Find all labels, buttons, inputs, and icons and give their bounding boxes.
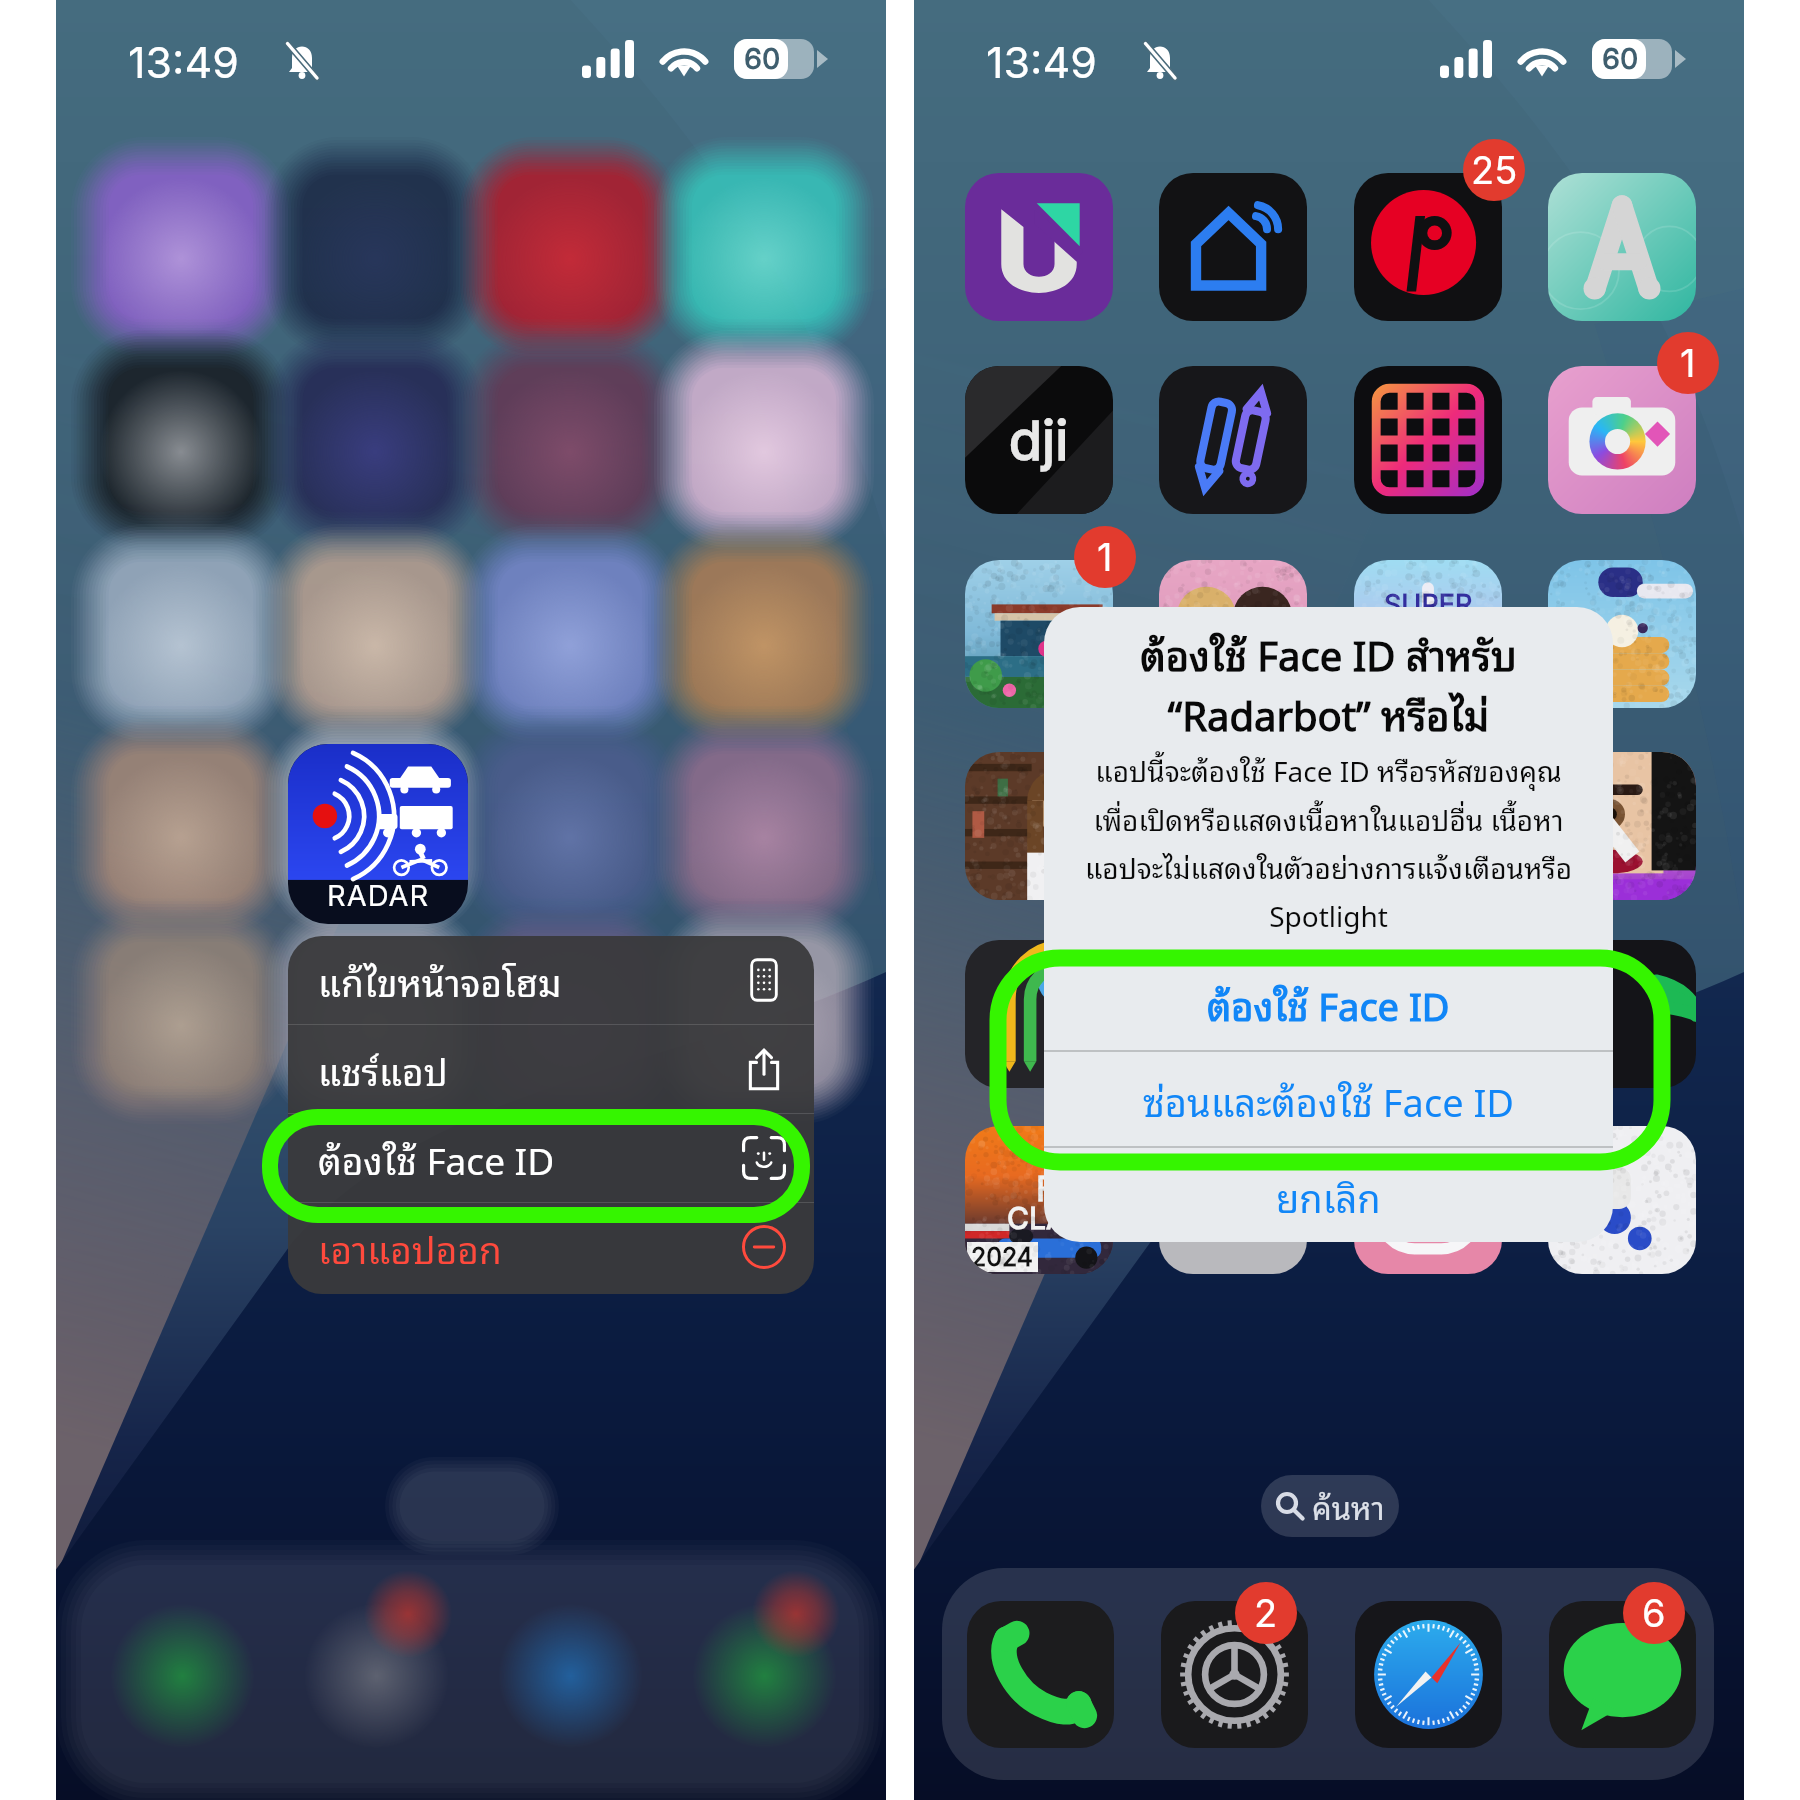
button[interactable]: Ubiquiti [965, 173, 1113, 321]
button[interactable]: Home Design [965, 560, 1113, 708]
staticText: SUPER [1384, 588, 1473, 621]
button[interactable]: ซ่อนและต้องใช้ Face ID [1044, 1052, 1613, 1146]
staticText: แอปนี้จะต้องใช้ Face ID หรือรหัสของคุณ เ… [1048, 747, 1609, 936]
staticText: dji [1009, 408, 1069, 473]
button[interactable]: แชร์แอป [288, 1025, 814, 1113]
staticText: 25 [1471, 147, 1518, 193]
button[interactable]: App [1159, 940, 1307, 1088]
button[interactable]: Messages [1549, 1601, 1696, 1748]
button[interactable]: Notes [1159, 366, 1307, 514]
staticText: F1 [1036, 1168, 1070, 1209]
staticText: MALL [1394, 618, 1463, 648]
button[interactable]: Settings [1161, 1601, 1308, 1748]
staticText: ต้องใช้ Face ID [318, 1129, 555, 1188]
button[interactable]: Radarbot [288, 744, 468, 924]
button[interactable]: เอาแอปออก [288, 1203, 814, 1291]
staticText: 60 [1602, 41, 1639, 76]
staticText: ค้นหา [1312, 1481, 1385, 1531]
button[interactable]: Spotify [1548, 940, 1696, 1088]
staticText: ยกเลิก [1276, 1165, 1381, 1226]
button[interactable]: Phone [967, 1601, 1114, 1748]
button[interactable]: Camera, 1 notification [1548, 366, 1696, 514]
button[interactable]: ต้องใช้ Face ID [288, 1114, 814, 1202]
button[interactable]: Fashion Game [1159, 560, 1307, 708]
button[interactable]: ต้องใช้ Face ID [1044, 956, 1613, 1050]
button[interactable]: Store Game [965, 752, 1113, 900]
staticText: 13:49 [986, 36, 1097, 88]
staticText: % [1191, 1148, 1276, 1252]
button[interactable]: Makeover Game [1548, 752, 1696, 900]
button[interactable]: Runner Game [1548, 1126, 1696, 1274]
staticText: 13:49 [128, 36, 239, 88]
staticText: CLA [1007, 1200, 1067, 1236]
button[interactable]: แก้ไขหน้าจอโฮม [288, 936, 814, 1024]
staticText: 2 [1254, 1590, 1278, 1636]
button[interactable]: Safari [1355, 1601, 1502, 1748]
staticText: 2024 [971, 1242, 1034, 1272]
staticText: ต้องใช้ Face ID [1207, 973, 1450, 1034]
button[interactable]: Artbook [1548, 173, 1696, 321]
button[interactable]: Idle Super Mall [1354, 560, 1502, 708]
button[interactable]: Deals [1159, 1126, 1307, 1274]
button[interactable]: DJI [965, 366, 1113, 514]
button[interactable]: Game [1354, 752, 1502, 900]
button[interactable]: Cooking Game [1548, 560, 1696, 708]
staticText: 60 [744, 41, 781, 76]
button[interactable]: Game [1159, 752, 1307, 900]
button[interactable]: Grid [1354, 366, 1502, 514]
staticText: 1 [1680, 340, 1696, 386]
button[interactable]: Pinterest, 25 notifications [1354, 173, 1502, 321]
button[interactable]: Smart Home [1159, 173, 1307, 321]
staticText: RADAR [327, 878, 430, 913]
staticText: 1 [1097, 534, 1113, 580]
staticText: แชร์แอป [318, 1040, 448, 1099]
staticText: ต้องใช้ Face ID สำหรับ “Radarbot” หรือไม… [1062, 621, 1595, 745]
button[interactable]: App [1354, 940, 1502, 1088]
staticText: เอาแอปออก [318, 1218, 502, 1277]
button[interactable]: Instagram [1354, 1126, 1502, 1274]
staticText: ซ่อนและต้องใช้ Face ID [1143, 1069, 1515, 1130]
button[interactable]: Ribbons [965, 940, 1113, 1088]
button[interactable]: F1 Clash [965, 1126, 1113, 1274]
button[interactable]: ยกเลิก [1044, 1148, 1613, 1242]
button[interactable]: ค้นหา [1261, 1475, 1399, 1537]
staticText: แก้ไขหน้าจอโฮม [318, 951, 562, 1010]
staticText: 6 [1642, 1590, 1666, 1636]
